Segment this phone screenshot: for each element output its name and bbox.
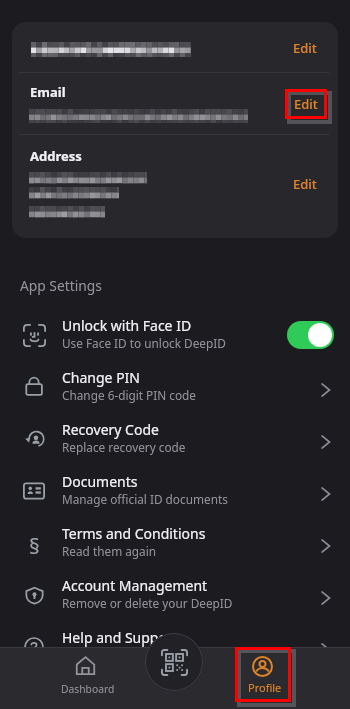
staticText: Edit [294,95,318,113]
staticText: App Settings [20,276,102,295]
button[interactable]: Edit [12,22,338,72]
button[interactable]: Account Management [0,569,350,621]
staticText: Manage official ID documents [62,491,228,507]
button[interactable]: Recovery Code [0,413,350,465]
button[interactable]: Unlock with Face ID [0,309,350,361]
button[interactable]: Scan QR code [145,633,203,691]
staticText: Use Face ID to unlock DeepID [62,335,226,351]
staticText: Dashboard [61,682,115,696]
button[interactable]: Documents [0,465,350,517]
staticText: Recovery Code [62,420,159,439]
staticText: Unlock with Face ID [62,316,192,335]
staticText: § [29,532,40,554]
staticText: Help and Support [62,628,178,647]
button[interactable]: Address [12,135,338,238]
staticText: Documents [62,472,138,491]
button[interactable]: Toggle Face ID [287,321,334,349]
button[interactable]: § [0,517,350,569]
staticText: Edit [293,175,317,193]
staticText: Edit [293,39,317,57]
button[interactable]: Email [12,73,338,134]
staticText: Email [30,83,66,101]
staticText: Account Management [62,576,208,595]
staticText: Terms and Conditions [62,524,206,543]
button[interactable]: Change PIN [0,361,350,413]
staticText: Remove or delete your DeepID [62,595,233,611]
staticText: Profile [248,680,282,695]
button[interactable]: Dashboard [50,650,122,702]
staticText: Read them again [62,543,157,559]
staticText: Get in touch with us [62,647,173,663]
staticText: Change 6-digit PIN code [62,387,196,403]
staticText: Change PIN [62,368,141,387]
button[interactable]: Profile [235,647,291,702]
button[interactable]: Edit [285,89,327,119]
staticText: Address [30,147,82,165]
staticText: Replace recovery code [62,439,186,455]
button[interactable]: Help and Support [0,621,350,673]
